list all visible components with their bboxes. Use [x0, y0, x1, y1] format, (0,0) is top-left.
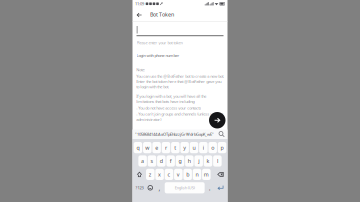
staticText: "1058684144:AaOTpEhbzzjGrWdrbGapK_wE" [135, 132, 214, 137]
button[interactable]: i [199, 142, 208, 153]
staticText: v [177, 171, 180, 178]
button[interactable]: v [174, 169, 183, 180]
staticText: If you login with a bot, you will have a… [136, 93, 206, 104]
staticText: Login with phone number [136, 53, 179, 58]
staticText: 11:09 [135, 1, 144, 6]
button[interactable]: s [148, 155, 156, 167]
button[interactable]: t [171, 142, 180, 153]
button[interactable]: y [180, 142, 189, 153]
staticText: m [204, 171, 209, 178]
button[interactable]: u [190, 142, 198, 153]
staticText: p [221, 144, 224, 151]
button[interactable]: g [176, 155, 184, 167]
staticText: Please enter your bot token [136, 40, 182, 45]
staticText: c [167, 171, 170, 178]
staticText: x [158, 171, 161, 178]
staticText: - You can't join groups and channels (un… [136, 111, 223, 122]
button[interactable]: , [155, 182, 164, 193]
button[interactable]: z [146, 169, 154, 180]
staticText: t [174, 144, 176, 151]
staticText: f [170, 157, 172, 165]
button[interactable]: b [183, 169, 192, 180]
button[interactable]: e [152, 142, 161, 153]
staticText: l [217, 157, 218, 165]
button[interactable]: j [194, 155, 203, 167]
staticText: ?123 [135, 185, 143, 190]
staticText: d [160, 157, 163, 165]
staticText: s [150, 157, 153, 165]
button[interactable]: . [205, 182, 214, 193]
button[interactable]: c [165, 169, 173, 180]
staticText: e [155, 144, 158, 151]
button[interactable]: h [185, 155, 194, 167]
button[interactable]: Emoji [146, 182, 154, 193]
button[interactable]: m [202, 169, 211, 180]
staticText: , [159, 183, 161, 192]
button[interactable]: k [204, 155, 212, 167]
button[interactable]: w [143, 142, 151, 153]
staticText: i [203, 144, 204, 151]
button[interactable]: Login with phone number [136, 52, 223, 58]
staticText: h [188, 157, 191, 165]
button[interactable]: o [208, 142, 217, 153]
staticText: Note: [136, 67, 145, 72]
staticText: r [165, 144, 167, 151]
staticText: o [211, 144, 214, 151]
button[interactable]: q [134, 142, 142, 153]
button[interactable]: English (US) [165, 182, 205, 193]
staticText: b [186, 171, 189, 178]
staticText: n [195, 171, 198, 178]
staticText: u [192, 144, 195, 151]
staticText: j [198, 157, 199, 165]
button[interactable]: Backspace [215, 169, 226, 180]
button[interactable]: d [157, 155, 166, 167]
staticText: - You do not have access your contacts [136, 105, 201, 111]
staticText: z [149, 171, 152, 178]
staticText: . [209, 183, 211, 192]
button[interactable]: l [213, 155, 222, 167]
button[interactable]: n [193, 169, 201, 180]
button[interactable]: ?123 [134, 182, 145, 193]
staticText: You can use the @BotFather bot to create… [136, 73, 224, 89]
button[interactable]: Back [134, 9, 145, 20]
staticText: y [183, 144, 186, 151]
staticText: g [178, 157, 181, 165]
button[interactable]: Enter [215, 182, 226, 193]
staticText: Bot Token [150, 11, 174, 18]
button[interactable]: Continue [209, 112, 225, 128]
button[interactable]: p [218, 142, 226, 153]
button[interactable]: Shift [134, 169, 145, 180]
staticText: a [141, 157, 144, 165]
button[interactable]: r [162, 142, 170, 153]
button[interactable]: f [166, 155, 175, 167]
staticText: k [206, 157, 209, 165]
button[interactable]: x [155, 169, 164, 180]
staticText: w [145, 144, 149, 151]
staticText: q [136, 144, 139, 151]
staticText: English (US) [175, 185, 195, 190]
button[interactable]: a [138, 155, 147, 167]
